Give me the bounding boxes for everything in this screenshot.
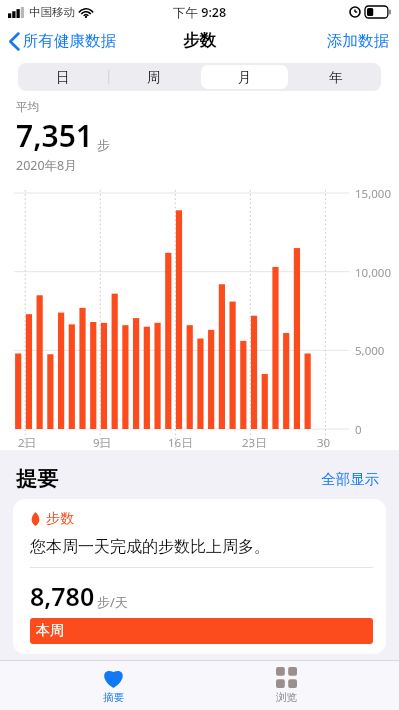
staticText: 所有健康数据 [23,31,116,51]
staticText: 提要 [16,466,58,492]
button[interactable]: 周 [110,65,197,89]
staticText: 摘要 [103,691,124,704]
staticText: 10,000 [355,265,391,281]
staticText: 平均 [16,100,39,114]
staticText: 本周 [36,622,64,640]
staticText: 日 [56,69,70,86]
staticText: 步数 [183,30,216,51]
staticText: 添加数据 [327,31,389,51]
staticText: 30 [317,435,331,451]
staticText: 0 [355,422,362,438]
button[interactable]: 步数 [13,499,386,654]
staticText: 5,000 [355,343,385,359]
staticText: 月 [238,69,252,86]
staticText: 步数 [46,510,74,528]
staticText: 全部显示 [321,470,379,488]
staticText: 2020年8月 [16,157,77,174]
staticText: 7,351 [16,115,94,156]
staticText: 您本周一天完成的步数比上周多。 [30,537,270,557]
staticText: 2日 [18,435,37,451]
staticText: 下午 9:28 [173,4,227,21]
staticText: 步/天 [97,593,128,611]
staticText: 23日 [242,435,267,451]
staticText: 步 [97,137,110,153]
staticText: 9日 [93,435,112,451]
button[interactable]: 日 [20,65,106,89]
staticText: 16日 [168,435,193,451]
button[interactable]: 全部显示 [317,466,383,492]
button[interactable]: 摘要 [53,661,173,710]
button[interactable]: 月 [201,65,288,89]
staticText: 年 [329,69,343,86]
staticText: 周 [147,69,161,86]
button[interactable]: 添加数据 [317,27,399,55]
staticText: 15,000 [355,186,391,202]
button[interactable]: 所有健康数据 [9,31,122,51]
staticText: 中国移动 [29,5,75,19]
button[interactable]: 浏览 [226,661,346,710]
staticText: 浏览 [276,691,297,704]
button[interactable]: 年 [292,65,379,89]
staticText: 8,780 [30,579,95,613]
